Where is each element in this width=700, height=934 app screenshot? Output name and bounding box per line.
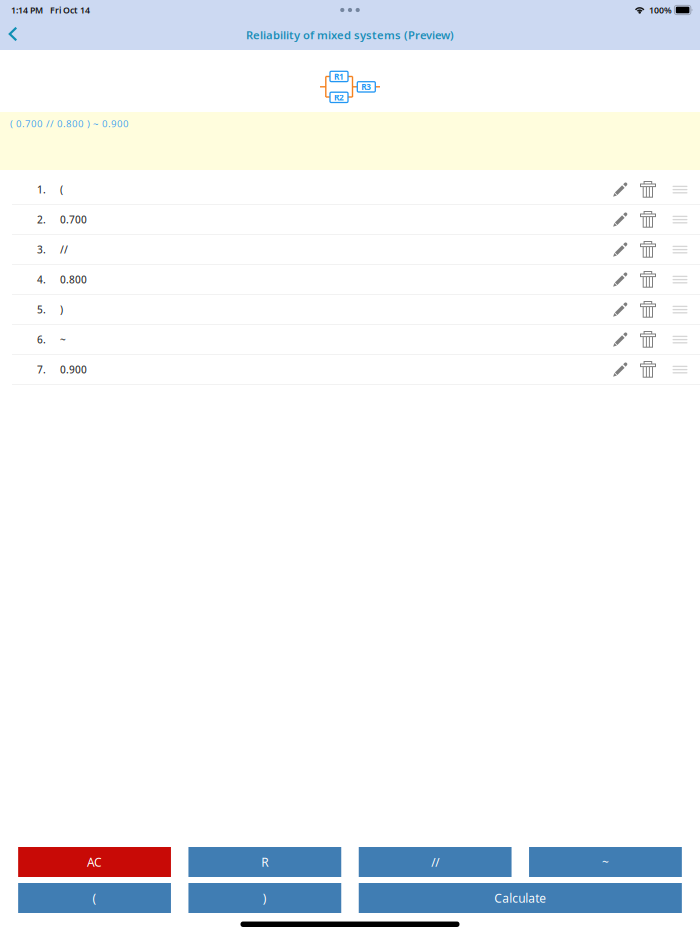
staticText: R (261, 854, 268, 870)
staticText: AC (87, 854, 102, 870)
button[interactable]: Edit item 5 (606, 295, 634, 324)
button[interactable]: Reorder item 4 (666, 265, 694, 294)
button[interactable]: ( (18, 883, 171, 913)
staticText: 2. (37, 213, 46, 226)
staticText: 3. (37, 243, 46, 256)
staticText: ( 0.700 // 0.800 ) ~ 0.900 (10, 117, 129, 130)
button[interactable]: Delete item 6 (634, 325, 662, 354)
button[interactable]: AC (18, 847, 171, 877)
staticText: Calculate (494, 890, 546, 906)
staticText: // (60, 243, 68, 256)
staticText: ( (92, 890, 96, 906)
button[interactable]: Edit item 1 (606, 175, 634, 204)
button[interactable]: ~ (529, 847, 682, 877)
staticText: R2 (334, 92, 344, 103)
button[interactable]: Delete item 2 (634, 205, 662, 234)
button[interactable]: Edit item 7 (606, 355, 634, 384)
staticText: // (431, 854, 439, 870)
staticText: 5. (37, 303, 46, 316)
staticText: 6. (37, 333, 46, 346)
button[interactable]: Delete item 7 (634, 355, 662, 384)
button[interactable]: // (359, 847, 512, 877)
button[interactable]: Calculate (359, 883, 682, 913)
staticText: 4. (37, 273, 46, 286)
button[interactable]: Delete item 5 (634, 295, 662, 324)
button[interactable]: Edit item 3 (606, 235, 634, 264)
staticText: R3 (361, 81, 371, 92)
button[interactable]: R (188, 847, 341, 877)
staticText: ) (60, 303, 63, 316)
button[interactable]: Reorder item 5 (666, 295, 694, 324)
staticText: 1:14 PM (11, 4, 43, 16)
button[interactable]: Reorder item 1 (666, 175, 694, 204)
button[interactable]: Back (2, 21, 24, 49)
button[interactable]: Reorder item 2 (666, 205, 694, 234)
staticText: Fri Oct 14 (50, 4, 90, 16)
staticText: 7. (37, 363, 46, 376)
button[interactable]: Delete item 1 (634, 175, 662, 204)
staticText: 1. (37, 183, 46, 196)
button[interactable]: Reorder item 3 (666, 235, 694, 264)
staticText: 0.800 (60, 273, 87, 286)
staticText: 0.900 (60, 363, 87, 376)
staticText: R1 (334, 71, 344, 82)
staticText: ~ (60, 333, 66, 346)
button[interactable]: ) (188, 883, 341, 913)
staticText: Reliability of mixed systems (Preview) (246, 27, 454, 43)
staticText: ( (60, 183, 63, 196)
staticText: ~ (602, 854, 609, 870)
button[interactable]: Edit item 4 (606, 265, 634, 294)
staticText: 100% (649, 4, 672, 16)
staticText: 0.700 (60, 213, 87, 226)
staticText: ) (263, 890, 267, 906)
button[interactable]: Reorder item 6 (666, 325, 694, 354)
button[interactable]: Delete item 3 (634, 235, 662, 264)
button[interactable]: Reorder item 7 (666, 355, 694, 384)
button[interactable]: Edit item 2 (606, 205, 634, 234)
button[interactable]: Delete item 4 (634, 265, 662, 294)
button[interactable]: Edit item 6 (606, 325, 634, 354)
